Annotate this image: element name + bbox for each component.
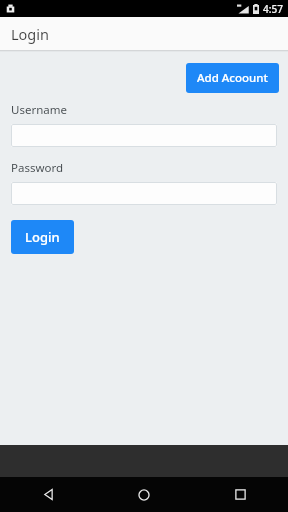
button[interactable]: Recent apps — [192, 477, 288, 512]
button[interactable]: Back — [0, 477, 96, 512]
button[interactable]: Add Acoount — [186, 63, 279, 93]
staticText: Login — [25, 228, 60, 246]
staticText: Add Acoount — [197, 70, 268, 86]
staticText: Login — [11, 24, 49, 44]
staticText: Password — [11, 160, 64, 176]
button[interactable] — [11, 182, 277, 205]
staticText: Username — [11, 102, 67, 118]
button[interactable]: Home — [96, 477, 192, 512]
button[interactable] — [11, 124, 277, 147]
button[interactable]: Login — [11, 220, 74, 254]
staticText: 4:57 — [263, 2, 283, 16]
